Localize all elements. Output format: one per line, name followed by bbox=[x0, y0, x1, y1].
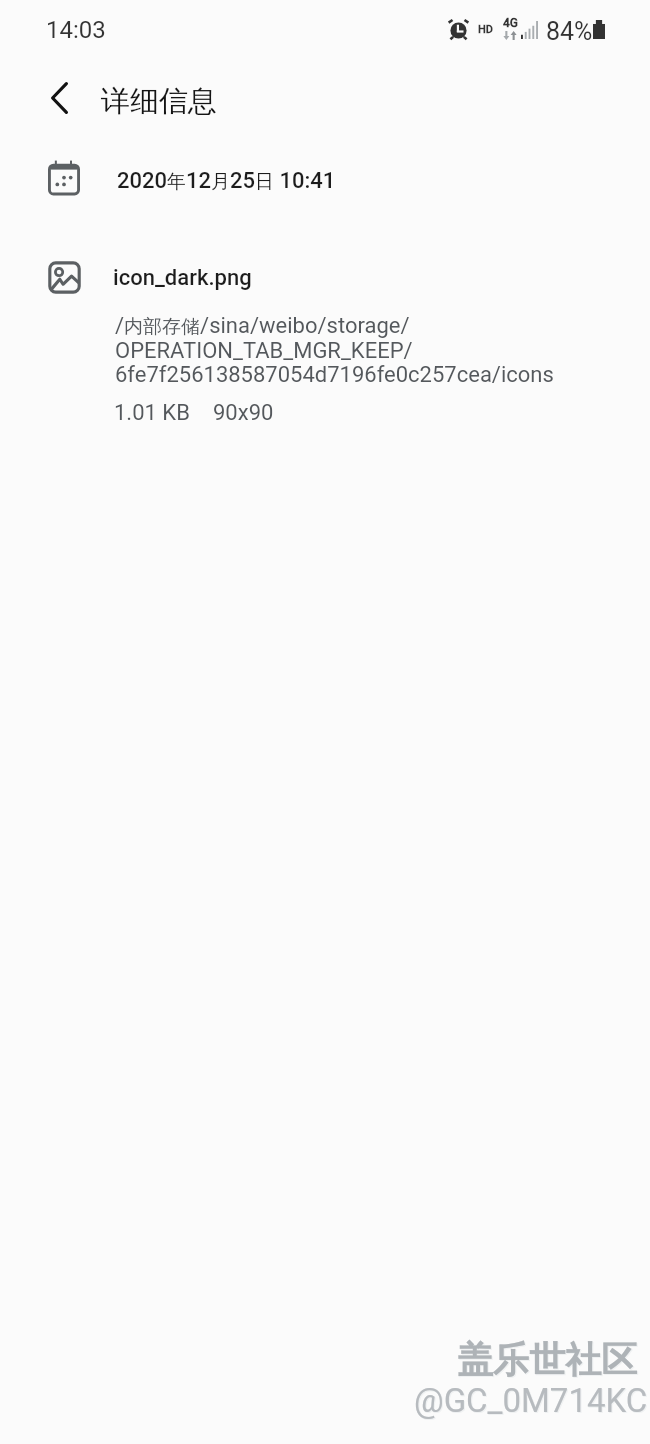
staticText: @GC_0M714KC bbox=[415, 1382, 649, 1421]
staticText: 14:03 bbox=[46, 16, 106, 44]
staticText: 盖乐世社区 bbox=[457, 1337, 637, 1382]
staticText: @GC_0M714KC bbox=[414, 1381, 648, 1420]
staticText: icon_dark.png bbox=[113, 265, 252, 291]
button[interactable]: 2020年12月25日 10:41 bbox=[0, 148, 650, 210]
staticText: 1.01 KB bbox=[114, 400, 190, 426]
staticText: /内部存储/sina/weibo/storage/ OPERATION_TAB_… bbox=[115, 313, 554, 387]
staticText: 详细信息 bbox=[101, 83, 217, 120]
button[interactable]: icon_dark.png bbox=[0, 250, 650, 440]
staticText: 2020年12月25日 10:41 bbox=[117, 168, 336, 194]
button[interactable]: Back bbox=[29, 68, 89, 128]
staticText: 4G bbox=[503, 16, 518, 30]
staticText: HD bbox=[478, 23, 494, 36]
staticText: 90x90 bbox=[213, 400, 274, 426]
staticText: 84% bbox=[546, 17, 593, 46]
staticText: 盖乐世社区 bbox=[458, 1338, 638, 1383]
